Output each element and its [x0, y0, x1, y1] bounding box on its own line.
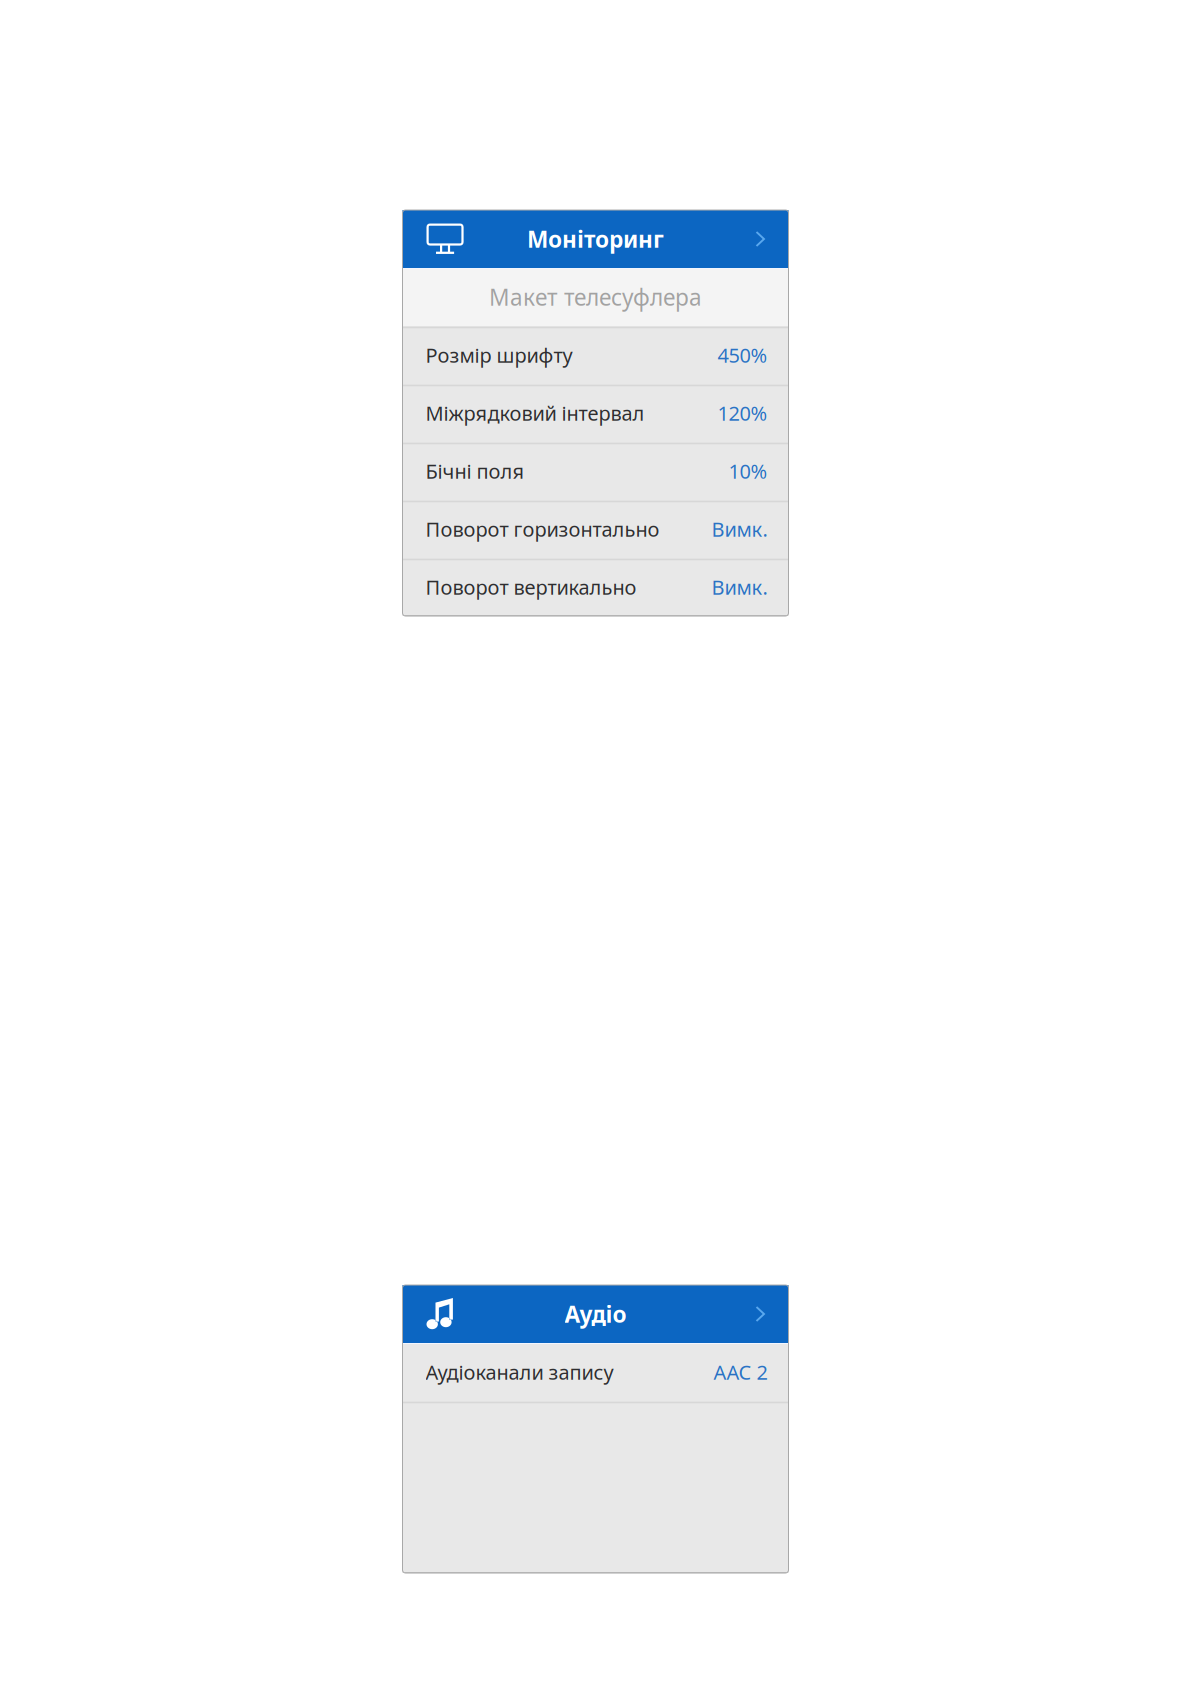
staticText: Розмір шрифту: [425, 342, 572, 368]
staticText: Міжрядковий інтервал: [425, 400, 644, 426]
staticText: Моніторинг: [527, 224, 664, 254]
staticText: 10%: [728, 458, 767, 484]
staticText: Поворот горизонтально: [425, 516, 659, 542]
staticText: Макет телесуфлера: [489, 282, 702, 312]
staticText: Поворот вертикально: [425, 574, 636, 600]
staticText: Аудіоканали запису: [425, 1359, 613, 1385]
staticText: Вимк.: [711, 516, 767, 542]
staticText: 120%: [717, 400, 767, 426]
button[interactable]: Розмір шрифту: [402, 326, 788, 384]
button[interactable]: Моніторинг: [402, 210, 788, 268]
staticText: Вимк.: [711, 574, 767, 600]
button[interactable]: Аудіо: [402, 1285, 788, 1343]
button[interactable]: Міжрядковий інтервал: [402, 384, 788, 442]
button[interactable]: Поворот горизонтально: [402, 500, 788, 558]
button[interactable]: Бічні поля: [402, 442, 788, 500]
button[interactable]: Поворот вертикально: [402, 558, 788, 616]
staticText: AAC 2: [713, 1359, 767, 1385]
button[interactable]: Аудіоканали запису: [402, 1343, 788, 1401]
staticText: Бічні поля: [425, 458, 524, 484]
staticText: Аудіо: [564, 1299, 626, 1329]
staticText: 450%: [717, 342, 767, 368]
